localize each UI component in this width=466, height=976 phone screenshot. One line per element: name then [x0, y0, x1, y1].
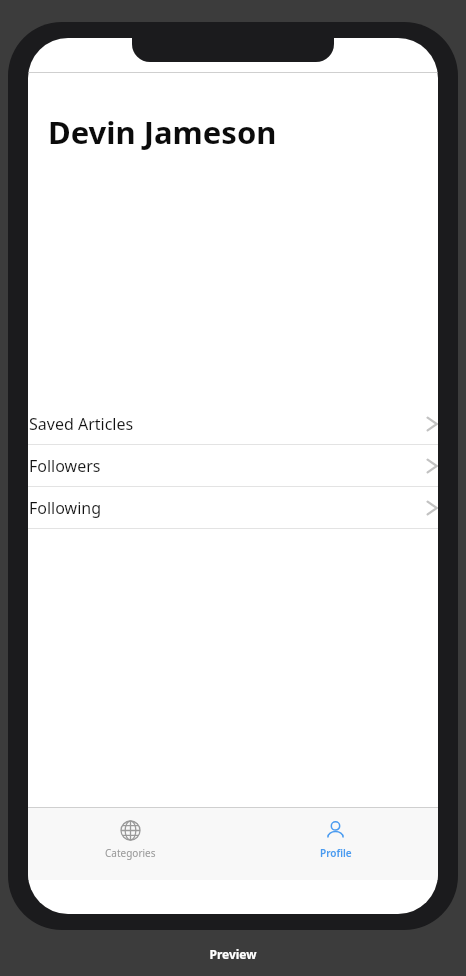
button[interactable]: Following [28, 487, 438, 528]
button[interactable]: Followers [28, 445, 438, 486]
staticText: Following [29, 497, 102, 519]
button[interactable]: Categories [28, 808, 233, 880]
staticText: Preview [209, 946, 257, 962]
staticText: Devin Jameson [48, 111, 277, 153]
staticText: Profile [320, 846, 352, 860]
button[interactable]: Saved Articles [28, 403, 438, 444]
staticText: Saved Articles [29, 413, 134, 435]
button[interactable]: Profile [233, 808, 438, 880]
staticText: Followers [29, 455, 101, 477]
staticText: Categories [105, 846, 156, 860]
